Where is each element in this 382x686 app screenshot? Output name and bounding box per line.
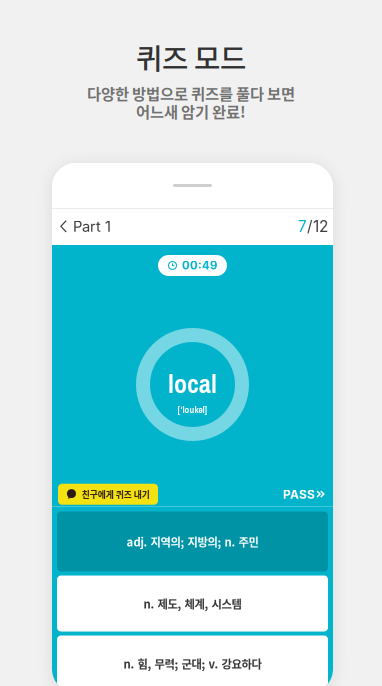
staticText: 퀴즈 모드 <box>136 36 246 78</box>
button[interactable]: adj. 지역의; 지방의; n. 주민 <box>57 511 328 571</box>
staticText: [ˈloukəl] <box>177 403 207 416</box>
button[interactable]: 7 <box>298 209 328 244</box>
staticText: n. 힘, 무력; 군대; v. 강요하다 <box>123 655 261 672</box>
button[interactable]: n. 힘, 무력; 군대; v. 강요하다 <box>57 635 328 686</box>
staticText: 다양한 방법으로 퀴즈를 풀다 보면 <box>87 82 295 104</box>
staticText: local <box>168 366 217 401</box>
staticText: 친구에게 퀴즈 내기 <box>82 488 150 501</box>
staticText: 7 <box>298 217 307 236</box>
staticText: n. 제도, 체계, 시스템 <box>143 595 241 612</box>
staticText: PASS <box>283 487 315 501</box>
staticText: /12 <box>307 217 328 236</box>
staticText: adj. 지역의; 지방의; n. 주민 <box>126 533 258 550</box>
staticText: 어느새 암기 완료! <box>136 100 246 122</box>
button[interactable]: Part 1 <box>60 210 111 243</box>
button[interactable]: PASS <box>283 483 325 505</box>
staticText: Part 1 <box>73 218 111 235</box>
button[interactable]: n. 제도, 체계, 시스템 <box>57 575 328 631</box>
button[interactable]: 친구에게 퀴즈 내기 <box>58 484 158 505</box>
staticText: 00:49 <box>182 259 217 272</box>
